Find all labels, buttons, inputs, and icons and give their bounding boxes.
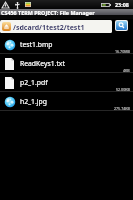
staticText: ReadKeys1.txt xyxy=(20,59,65,68)
staticText: 4KB xyxy=(123,68,130,73)
staticText: CS456 TERM PROJECT: File Manager xyxy=(1,9,95,16)
button[interactable]: Search xyxy=(116,21,127,30)
staticText: p2_1.pdf xyxy=(20,78,48,87)
staticText: /sdcard/1test2/test1 xyxy=(13,23,85,33)
staticText: 23:08 xyxy=(115,1,129,8)
staticText: 52.00KB xyxy=(116,87,130,92)
staticText: h2_1.jpg xyxy=(20,97,47,106)
button[interactable]: ReadKeys1.txt xyxy=(0,54,133,73)
staticText: 16.70MB xyxy=(115,49,130,54)
button[interactable]: p2_1.pdf xyxy=(0,73,133,92)
button[interactable]: h2_1.jpg xyxy=(0,92,133,111)
staticText: 275.74KB xyxy=(114,106,130,111)
button[interactable]: test1.bmp xyxy=(0,35,133,54)
button[interactable]: /sdcard/1test2/test1 xyxy=(0,20,112,33)
staticText: test1.bmp xyxy=(20,40,53,49)
